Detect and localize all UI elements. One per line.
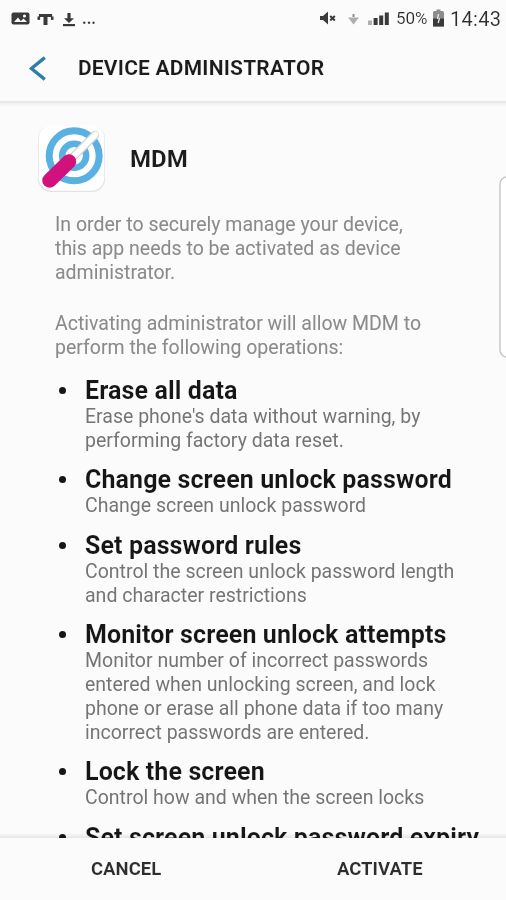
staticText: MDM [130,145,188,173]
staticText: Activating administrator will allow MDM … [55,312,422,358]
staticText: ... [82,9,96,28]
staticText: In order to securely manage your device,… [55,213,403,283]
button[interactable]: ACTIVATE [253,838,506,900]
staticText: Set screen unlock password expiry [85,823,480,852]
button[interactable]: CANCEL [0,838,253,900]
staticText: Set password rules [85,531,302,560]
staticText: DEVICE ADMINISTRATOR [78,56,325,81]
staticText: CANCEL [91,858,162,880]
staticText: Control the screen unlock password lengt… [85,560,455,606]
button[interactable] [0,36,64,101]
staticText: Control how frequently the screen unlock [85,852,439,875]
staticText: Erase phone's data without warning, by p… [85,405,421,451]
staticText: Control how and when the screen locks [85,786,425,809]
staticText: 14:43 [450,7,502,30]
staticText: Change screen unlock password [85,494,367,517]
staticText: Monitor number of incorrect passwords en… [85,649,444,743]
staticText: Erase all data [85,376,238,405]
staticText: Lock the screen [85,757,265,786]
staticText: Change screen unlock password [85,465,452,494]
staticText: 50% [396,8,428,28]
staticText: Monitor screen unlock attempts [85,620,447,649]
staticText: ACTIVATE [337,858,423,880]
